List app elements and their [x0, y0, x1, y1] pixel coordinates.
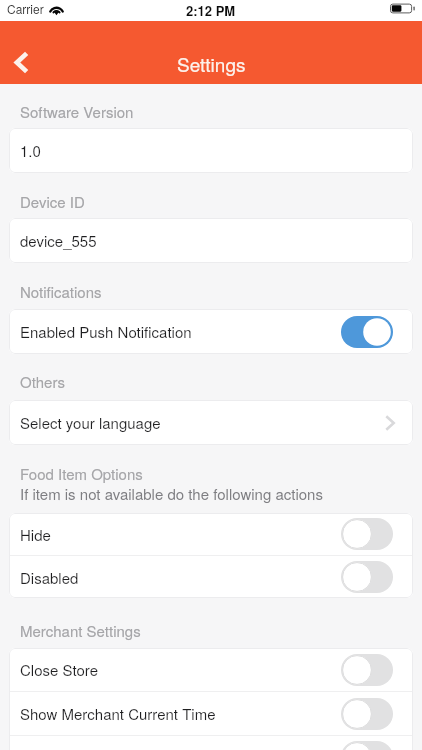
staticText: Settings	[177, 50, 246, 77]
button[interactable]: Hide	[9, 513, 413, 555]
staticText: Food Item Options	[20, 463, 143, 484]
staticText: Notifications	[20, 281, 102, 302]
staticText: 2:12 PM	[186, 1, 236, 20]
staticText: Merchant Settings	[20, 620, 141, 641]
staticText: Show Merchant Current Time	[20, 703, 216, 724]
staticText: Software Version	[20, 101, 134, 122]
staticText: If item is not available do the followin…	[20, 483, 323, 504]
staticText: Select your language	[20, 412, 161, 433]
staticText: Others	[20, 371, 66, 392]
staticText: 1.0	[20, 140, 41, 161]
button[interactable]: Select your language	[9, 400, 413, 445]
staticText: Close Store	[20, 659, 98, 680]
button[interactable]: Back	[0, 40, 42, 84]
button[interactable]: Enabled Push Notification	[9, 309, 413, 354]
staticText: Hide	[20, 524, 51, 545]
button[interactable]: Accept Orders	[9, 736, 413, 750]
staticText: Device ID	[20, 191, 85, 212]
button[interactable]: Show Merchant Current Time	[9, 692, 413, 735]
staticText: Disabled	[20, 567, 79, 588]
staticText: device_555	[20, 230, 97, 251]
staticText: Carrier	[7, 0, 44, 17]
staticText: Enabled Push Notification	[20, 321, 192, 342]
button[interactable]: Disabled	[9, 556, 413, 598]
button[interactable]: Close Store	[9, 648, 413, 691]
